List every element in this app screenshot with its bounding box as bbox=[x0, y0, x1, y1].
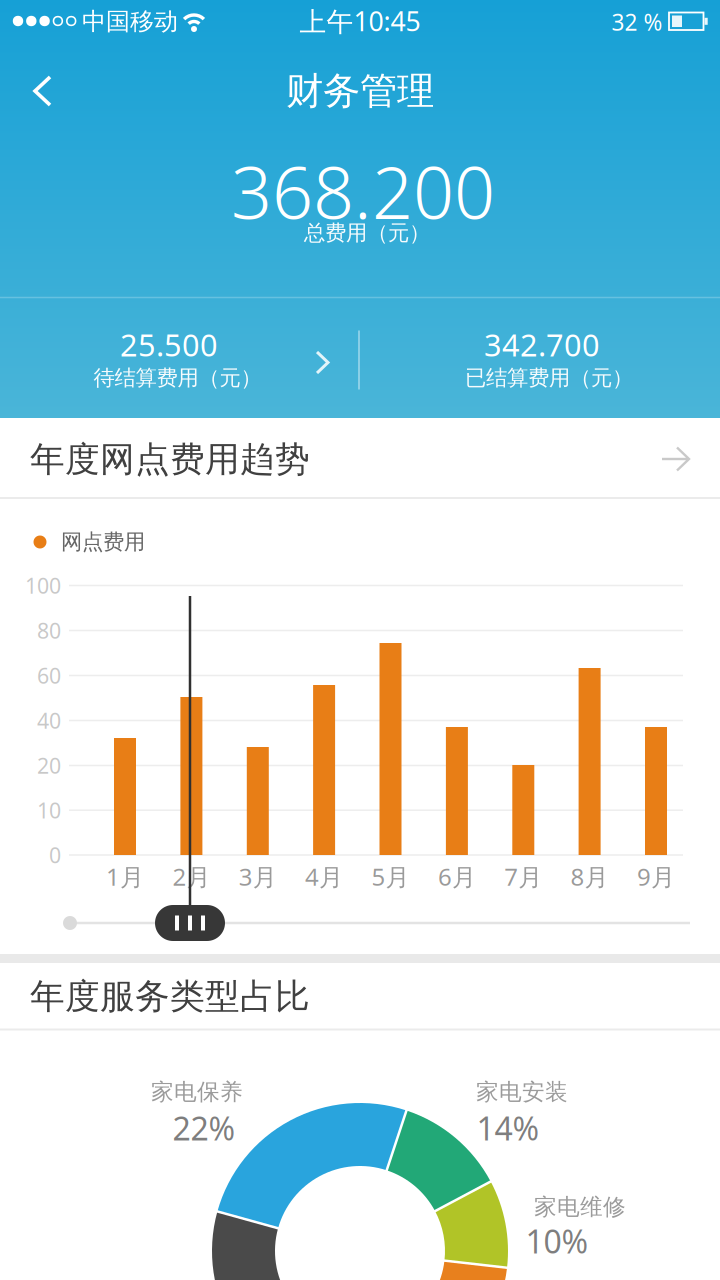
staticText: 家电保养 bbox=[151, 1078, 243, 1106]
staticText: 总费用（元） bbox=[304, 220, 430, 246]
staticText: 待结算费用（元） bbox=[93, 365, 261, 391]
staticText: 8月 bbox=[571, 861, 609, 892]
staticText: 80 bbox=[37, 616, 61, 645]
staticText: 10 bbox=[37, 796, 61, 824]
staticText: 5月 bbox=[371, 861, 409, 892]
staticText: 22% bbox=[172, 1107, 235, 1149]
staticText: 已结算费用（元） bbox=[465, 365, 633, 391]
staticText: 20 bbox=[37, 751, 61, 780]
staticText: 40 bbox=[37, 706, 61, 735]
staticText: 10% bbox=[525, 1220, 588, 1262]
staticText: 2月 bbox=[172, 861, 210, 892]
staticText: 3月 bbox=[239, 861, 277, 892]
staticText: 年度服务类型占比 bbox=[30, 975, 310, 1018]
staticText: 1月 bbox=[106, 861, 144, 892]
staticText: 9月 bbox=[637, 861, 675, 892]
staticText: 6月 bbox=[438, 861, 476, 892]
button[interactable] bbox=[0, 51, 90, 131]
staticText: 7月 bbox=[504, 861, 542, 892]
staticText: 342.700 bbox=[484, 324, 600, 365]
button[interactable]: 25.500 bbox=[0, 298, 720, 418]
staticText: 0 bbox=[49, 841, 61, 869]
staticText: 32 % bbox=[611, 7, 662, 37]
staticText: 25.500 bbox=[120, 324, 218, 365]
staticText: 4月 bbox=[305, 861, 343, 892]
staticText: 中国移动 bbox=[82, 7, 178, 36]
button[interactable] bbox=[155, 905, 225, 941]
staticText: 家电维修 bbox=[534, 1193, 626, 1221]
staticText: 网点费用 bbox=[61, 529, 145, 555]
staticText: 100 bbox=[25, 571, 61, 600]
staticText: 家电安装 bbox=[476, 1078, 568, 1106]
staticText: 368.200 bbox=[231, 143, 495, 239]
button[interactable]: 年度网点费用趋势 bbox=[0, 419, 720, 498]
staticText: 财务管理 bbox=[286, 68, 434, 114]
staticText: 年度网点费用趋势 bbox=[30, 438, 310, 481]
staticText: 60 bbox=[37, 661, 61, 690]
staticText: 上午10:45 bbox=[299, 3, 420, 39]
staticText: 14% bbox=[476, 1107, 539, 1149]
